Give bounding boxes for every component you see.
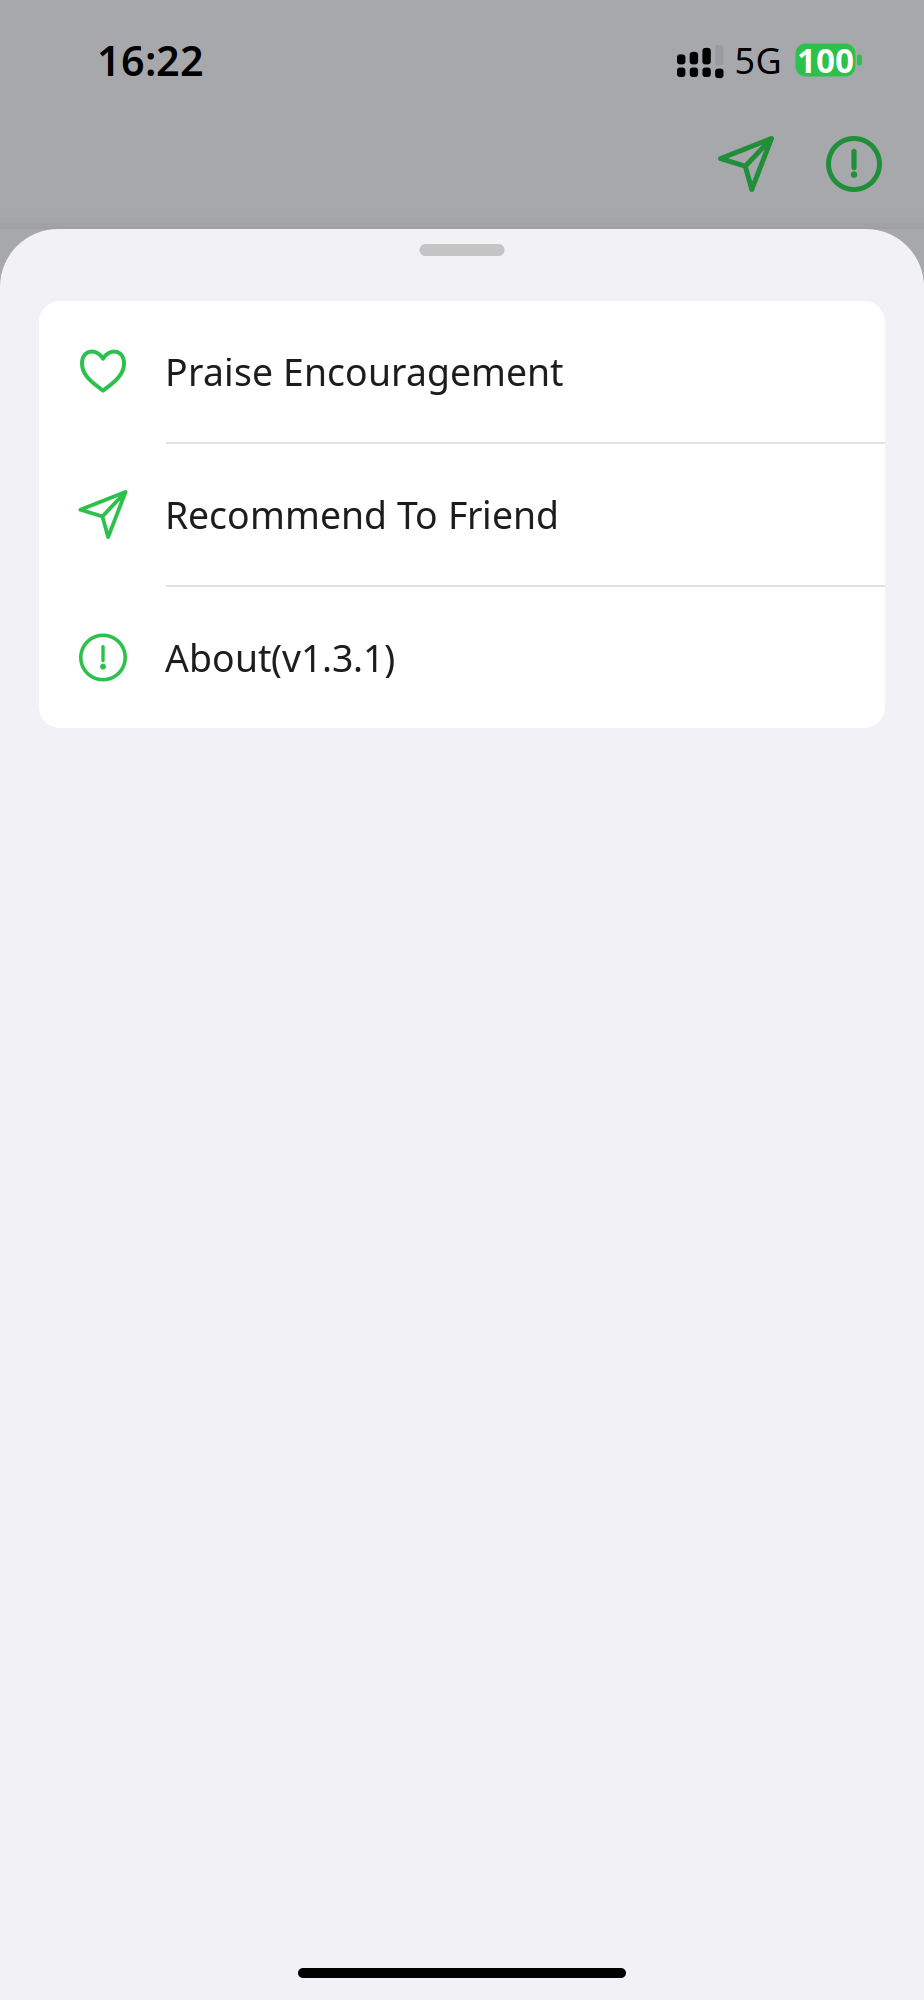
- staticText: 100: [797, 38, 854, 82]
- staticText: 5G: [734, 36, 781, 84]
- button[interactable]: Share: [707, 125, 785, 203]
- staticText: 16:22: [97, 33, 204, 87]
- button[interactable]: Recommend To Friend: [39, 444, 885, 585]
- staticText: Praise Encouragement: [165, 347, 563, 396]
- button[interactable]: About(v1.3.1): [39, 587, 885, 728]
- button[interactable]: About: [815, 125, 893, 203]
- staticText: Recommend To Friend: [165, 490, 559, 539]
- staticText: About(v1.3.1): [165, 633, 395, 682]
- button[interactable]: Praise Encouragement: [39, 301, 885, 442]
